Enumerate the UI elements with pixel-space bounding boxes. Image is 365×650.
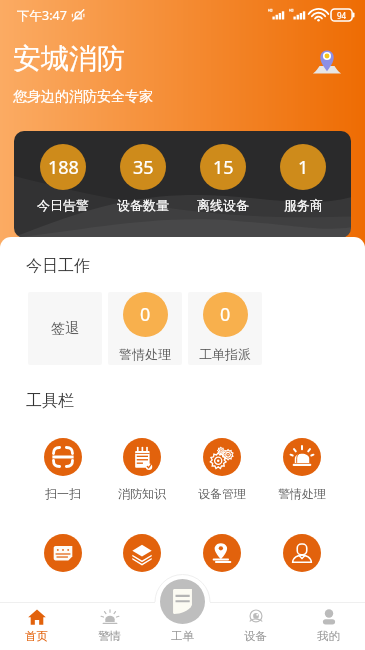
staticText: 警情 — [98, 629, 121, 643]
button[interactable]: 消防知识 — [102, 438, 182, 501]
button[interactable]: 我的 — [292, 602, 365, 650]
button[interactable]: 警情 — [73, 602, 146, 650]
staticText: 工单 — [171, 629, 194, 643]
button[interactable]: 工单 — [146, 602, 219, 650]
staticText: 首页 — [25, 629, 48, 643]
button[interactable]: 警情处理 — [262, 438, 342, 501]
staticText: 下午3:47 — [17, 7, 67, 24]
button[interactable]: 设备 — [219, 602, 292, 650]
staticText: 消防知识 — [118, 486, 166, 501]
staticText: 今日工作 — [26, 256, 90, 276]
button[interactable]: Tool — [182, 534, 262, 572]
staticText: 94 — [337, 10, 347, 21]
staticText: 离线设备 — [197, 197, 249, 213]
staticText: 设备 — [244, 629, 267, 643]
staticText: 安城消防 — [13, 41, 125, 76]
staticText: 我的 — [317, 629, 340, 643]
staticText: 设备管理 — [198, 486, 246, 501]
button[interactable]: 扫一扫 — [23, 438, 102, 501]
staticText: 设备数量 — [117, 197, 169, 213]
staticText: 工单指派 — [199, 346, 251, 362]
button[interactable]: 0 — [188, 292, 262, 365]
staticText: 警情处理 — [119, 346, 171, 362]
button[interactable]: Tool — [23, 534, 102, 572]
button[interactable]: 工单 — [160, 579, 205, 624]
button[interactable]: 首页 — [0, 602, 73, 650]
staticText: 0 — [220, 302, 231, 327]
button[interactable]: 签退 — [28, 292, 102, 365]
staticText: 工具栏 — [26, 391, 74, 411]
staticText: 今日告警 — [37, 197, 89, 213]
button[interactable]: 设备管理 — [182, 438, 262, 501]
staticText: 警情处理 — [278, 486, 326, 501]
button[interactable]: Map — [312, 46, 342, 76]
button[interactable]: Tool — [102, 534, 182, 572]
staticText: 188 — [48, 155, 79, 180]
staticText: 35 — [133, 155, 154, 180]
staticText: 0 — [140, 302, 151, 327]
staticText: 签退 — [51, 320, 79, 338]
staticText: 您身边的消防安全专家 — [13, 88, 153, 106]
staticText: 扫一扫 — [45, 486, 81, 501]
staticText: 1 — [298, 155, 309, 180]
button[interactable]: 0 — [108, 292, 182, 365]
button[interactable]: Tool — [262, 534, 342, 572]
staticText: 15 — [213, 155, 234, 180]
staticText: 服务商 — [284, 197, 323, 213]
